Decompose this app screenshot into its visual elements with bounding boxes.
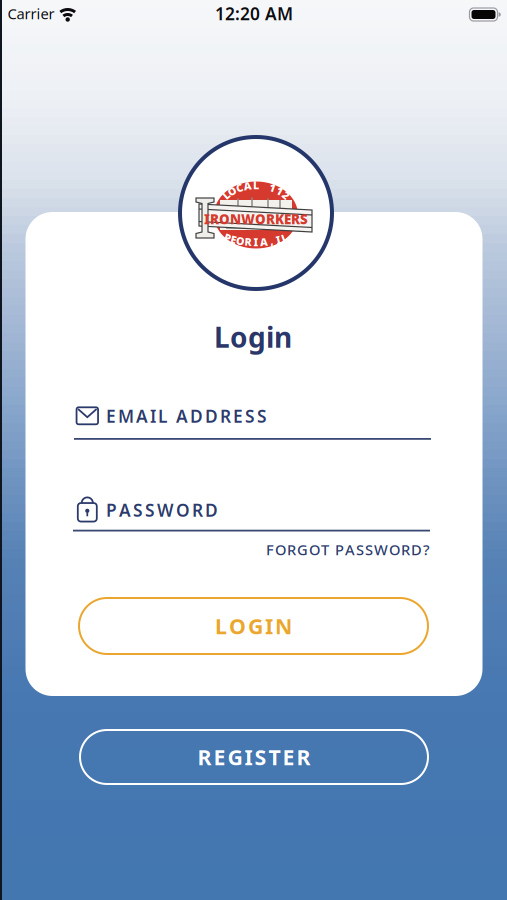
staticText: 12:20 AM	[215, 2, 293, 25]
staticText: 2	[283, 188, 289, 202]
staticText: I	[276, 232, 281, 247]
staticText: IRONWORKERS	[204, 210, 308, 228]
button[interactable]: P A S S W O R D	[74, 488, 431, 536]
staticText: F O R G O T P A S S W O R D ?	[266, 540, 430, 559]
button[interactable]: R E G I S T E R	[80, 730, 428, 784]
staticText: L	[253, 178, 259, 192]
staticText: Carrier	[7, 4, 54, 23]
staticText: O	[236, 234, 245, 248]
staticText	[263, 179, 266, 193]
staticText: L	[223, 188, 229, 202]
staticText: A	[260, 235, 268, 249]
staticText: R	[245, 235, 252, 249]
staticText: L O G I N	[215, 612, 292, 640]
staticText: C	[236, 181, 243, 195]
staticText: Login	[214, 318, 292, 356]
staticText: E	[231, 232, 237, 247]
staticText: A	[244, 179, 252, 193]
staticText: R E G I S T E R	[197, 743, 310, 771]
staticText: P A S S W O R D	[106, 498, 218, 521]
button[interactable]: F O R G O T P A S S W O R D ?	[170, 538, 430, 560]
button[interactable]: L O G I N	[79, 598, 428, 654]
staticText: 1	[269, 181, 275, 195]
staticText: P	[224, 231, 231, 245]
button[interactable]: E M A I L A D D R E S S	[74, 398, 431, 442]
staticText: O	[228, 184, 237, 198]
staticText: ,	[270, 234, 273, 248]
staticText: 1	[277, 184, 283, 198]
staticText: I	[253, 235, 258, 249]
staticText: L	[281, 231, 287, 245]
staticText: E M A I L A D D R E S S	[106, 404, 267, 427]
